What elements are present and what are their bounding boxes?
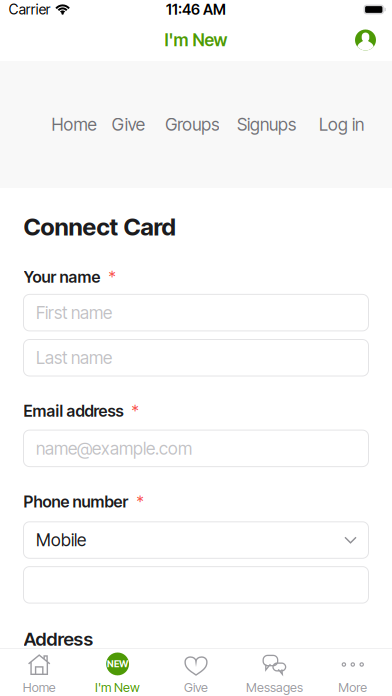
button[interactable]: Give [99, 104, 157, 144]
staticText: Mobile [36, 530, 86, 551]
button[interactable]: NEW [78, 648, 157, 696]
staticText: Carrier [9, 1, 51, 18]
button[interactable]: name@example.com [23, 430, 368, 467]
staticText: Give [184, 680, 208, 695]
button[interactable]: Give [157, 648, 235, 696]
button[interactable]: Signups [227, 104, 306, 144]
staticText: I'm New [95, 680, 140, 695]
staticText: Signups [237, 114, 296, 135]
staticText: name@example.com [36, 438, 192, 459]
button[interactable]: Messages [235, 648, 314, 696]
staticText: 11:46 AM [166, 1, 226, 18]
staticText: Log in [319, 114, 364, 135]
button[interactable]: Home [49, 104, 99, 144]
staticText: Home [23, 680, 56, 695]
staticText: * [123, 401, 138, 421]
staticText: Phone number [23, 492, 128, 511]
button[interactable]: Account [355, 29, 376, 50]
staticText: Connect Card [23, 212, 175, 241]
staticText: * [100, 267, 115, 287]
staticText: NEW [107, 658, 128, 670]
staticText: Email address [23, 401, 123, 421]
staticText: More [338, 680, 367, 695]
staticText: First name [36, 302, 112, 323]
button[interactable]: Groups [157, 104, 227, 144]
button[interactable]: First name [23, 294, 368, 331]
staticText: Messages [246, 680, 303, 695]
button[interactable]: Log in [306, 104, 377, 144]
staticText: I'm New [164, 29, 227, 50]
button[interactable]: Home [0, 648, 78, 696]
button[interactable]: Mobile [23, 522, 368, 558]
staticText: Give [112, 114, 145, 135]
staticText: Last name [36, 347, 112, 368]
staticText: * [128, 492, 143, 511]
button[interactable]: Last name [23, 339, 368, 376]
staticText: Your name [23, 267, 100, 287]
staticText: Groups [165, 114, 219, 135]
staticText: Home [51, 114, 96, 135]
button[interactable]: More [314, 648, 392, 696]
staticText: Address [23, 628, 93, 650]
